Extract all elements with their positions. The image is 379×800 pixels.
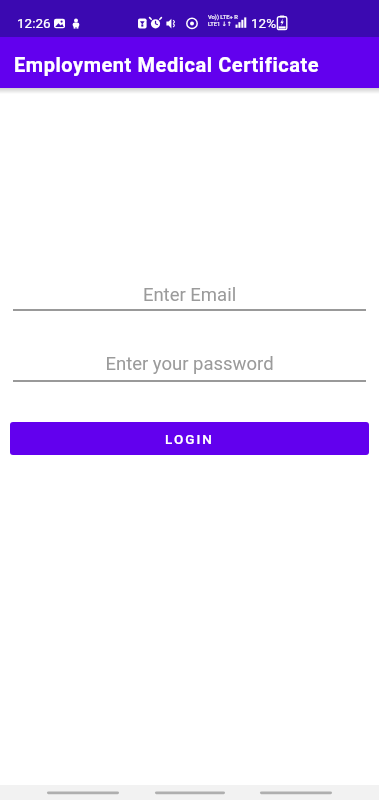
button[interactable]: Enter your password [13, 347, 366, 381]
staticText: LOGIN [165, 431, 214, 447]
staticText: 12:26 [17, 15, 51, 31]
staticText: Vo)) LTE+ R [208, 14, 238, 21]
staticText: LTE1 ↓↑ [208, 21, 232, 28]
staticText: Enter your password [13, 353, 366, 375]
button[interactable]: LOGIN [10, 422, 369, 455]
staticText: Enter Email [13, 284, 366, 306]
staticText: 12% [251, 15, 277, 31]
staticText: Employment Medical Certificate [14, 53, 320, 76]
button[interactable]: Enter Email [13, 278, 366, 312]
